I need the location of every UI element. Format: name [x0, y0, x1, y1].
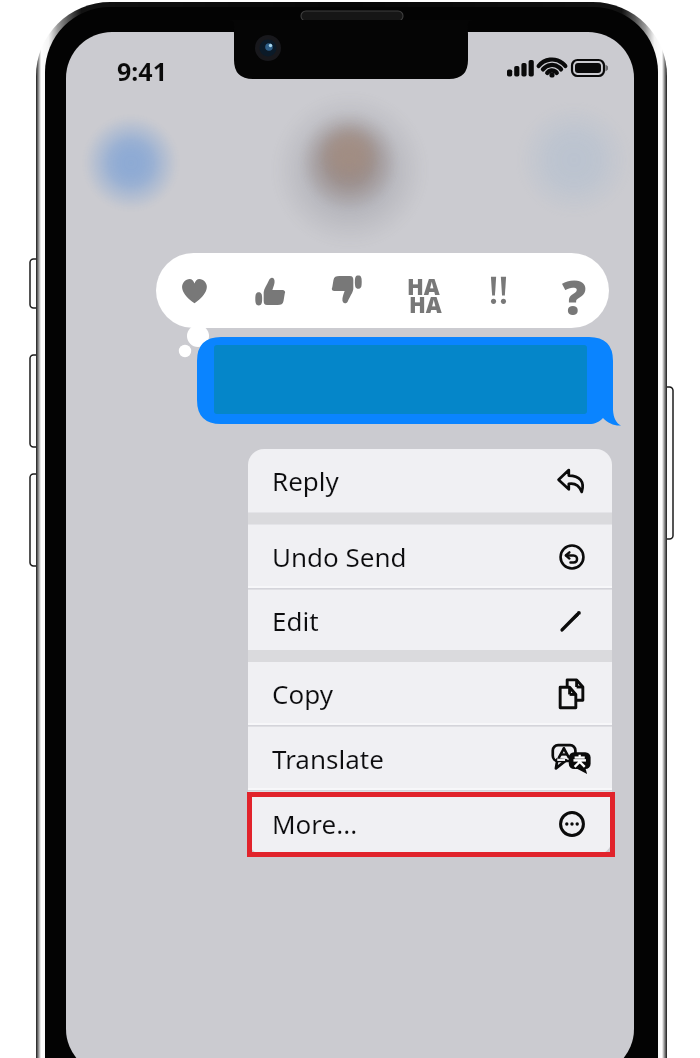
staticText: 9:41 [117, 54, 167, 88]
button[interactable]: More... [248, 792, 612, 855]
staticText: HA [407, 271, 440, 301]
staticText: Copy [272, 676, 333, 711]
staticText: ? [562, 264, 587, 329]
button[interactable]: Translate [248, 727, 612, 790]
button[interactable]: Reply [248, 449, 612, 512]
button[interactable]: Edit [248, 590, 612, 650]
staticText: Reply [272, 463, 339, 498]
staticText: More... [272, 806, 358, 841]
staticText: Translate [272, 741, 384, 776]
button[interactable]: Copy [248, 662, 612, 725]
button[interactable]: Question [536, 253, 609, 328]
button[interactable]: Haha [384, 253, 460, 328]
staticText: Edit [272, 603, 319, 638]
button[interactable]: Undo Send [248, 525, 612, 588]
staticText: Undo Send [272, 539, 407, 574]
staticText: HA [409, 289, 442, 319]
button[interactable]: Exclamation [460, 253, 536, 328]
button[interactable]: Love [156, 253, 232, 328]
button[interactable]: Thumbs down [308, 253, 384, 328]
button[interactable]: Thumbs up [232, 253, 308, 328]
